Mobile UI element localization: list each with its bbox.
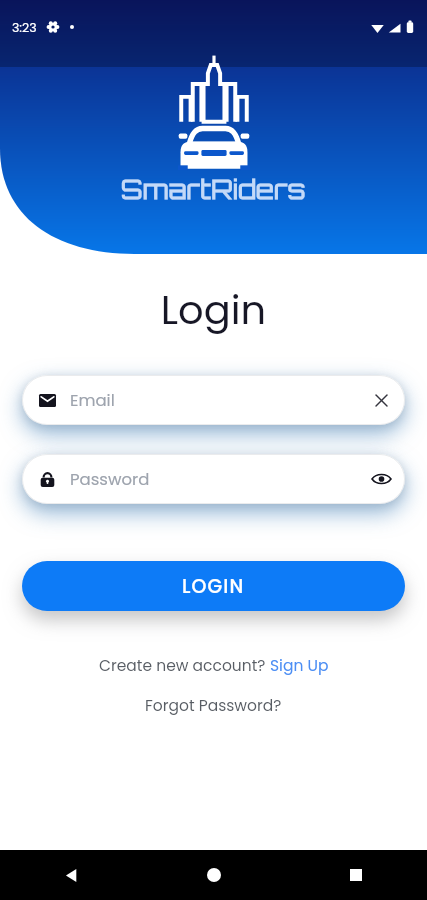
button[interactable]: LOGIN xyxy=(22,561,405,611)
button[interactable]: Home xyxy=(143,850,285,900)
staticText: Password xyxy=(70,468,357,491)
staticText: Login xyxy=(0,282,427,338)
button[interactable]: Back xyxy=(0,850,143,900)
staticText: Sign Up xyxy=(270,655,329,677)
button[interactable]: Password xyxy=(22,454,405,504)
staticText: LOGIN xyxy=(182,573,245,600)
button[interactable]: Show password xyxy=(357,455,405,503)
staticText: Create new account? xyxy=(99,655,270,677)
staticText: Email xyxy=(70,389,357,412)
staticText: SmartRiders xyxy=(121,173,306,206)
button[interactable]: Email xyxy=(22,375,405,425)
button[interactable]: Sign Up xyxy=(270,655,329,677)
staticText: 3:23 xyxy=(12,19,37,36)
button[interactable]: Forgot Password? xyxy=(145,695,282,717)
button[interactable]: Recent apps xyxy=(285,850,427,900)
button[interactable]: Clear email xyxy=(357,376,405,424)
staticText: Forgot Password? xyxy=(145,695,282,717)
